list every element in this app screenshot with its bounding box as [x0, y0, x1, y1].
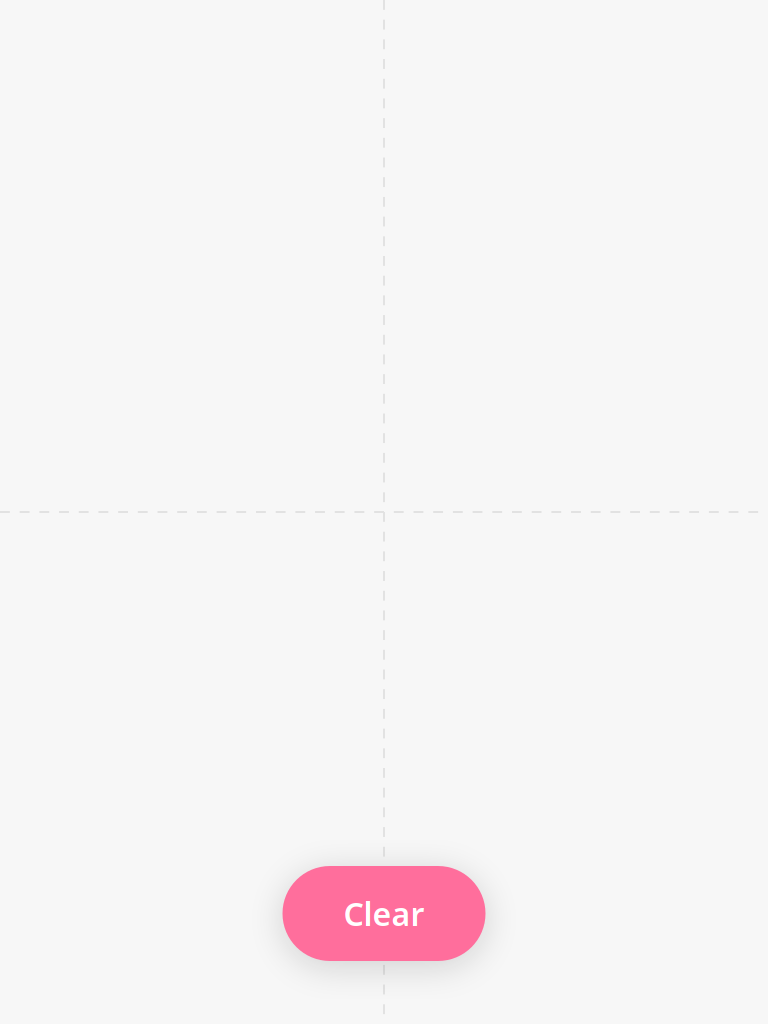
button[interactable]: Clear [282, 866, 485, 961]
staticText: Clear [343, 892, 424, 935]
